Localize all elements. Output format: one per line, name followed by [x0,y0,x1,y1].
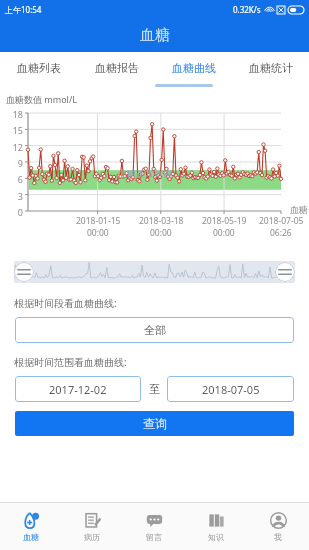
button[interactable]: Adjust range [275,262,295,282]
staticText: 根据时间范围看血糖曲线: [14,355,127,369]
staticText: 血糖曲线 [172,61,216,75]
button[interactable]: Adjust range [14,262,34,282]
button[interactable]: 血糖曲线 [155,52,232,84]
button[interactable]: 血糖报告 [78,52,155,84]
staticText: 2017-12-02 [49,382,107,397]
staticText: 00:00 [150,227,172,239]
button[interactable]: 病历 [61,503,123,550]
staticText: 00:00 [87,227,109,239]
button[interactable]: 血糖 [0,503,61,550]
staticText: 血糖 [140,26,170,45]
staticText: 上午10:54 [5,4,42,15]
staticText: 9 [5,157,23,169]
staticText: 0.32K/s [233,4,261,15]
button[interactable]: 2017-12-02 [15,376,141,402]
staticText: 血糖 [23,532,39,542]
button[interactable]: 查询 [15,411,294,436]
staticText: 06:26 [270,227,292,239]
staticText: 血糖列表 [17,61,61,75]
staticText: 2018-07-05 [202,382,260,397]
button[interactable]: 知识 [185,503,247,550]
staticText: 全部 [144,323,166,337]
button[interactable]: 血糖列表 [0,52,78,84]
staticText: 2018-01-15 [76,215,121,227]
staticText: 血糖正常范围 [118,168,172,179]
button[interactable]: 全部 [15,317,294,343]
staticText: 12 [5,141,23,153]
staticText: 血糖 [290,204,308,215]
staticText: 00:00 [213,227,235,239]
staticText: 18 [5,108,23,120]
staticText: 根据时间段看血糖曲线: [14,296,117,310]
staticText: 2018-03-18 [139,215,184,227]
staticText: 6 [5,173,23,185]
button[interactable]: 2018-07-05 [167,376,294,402]
staticText: 查询 [143,416,167,431]
staticText: 0 [5,206,23,218]
staticText: 血糖统计 [249,61,293,75]
staticText: 血糖报告 [95,61,139,75]
staticText: 至 [149,382,160,396]
staticText: 血糖数值 mmol/L [6,93,78,105]
staticText: 2018-07-05 [259,215,304,227]
staticText: 3 [5,190,23,202]
staticText: 留言 [146,532,162,542]
button[interactable]: 血糖统计 [232,52,309,84]
button[interactable]: 我 [247,503,309,550]
staticText: 病历 [84,532,100,542]
staticText: 2018-05-19 [202,215,247,227]
staticText: 知识 [208,532,224,542]
button[interactable]: 留言 [123,503,185,550]
staticText: 我 [274,532,282,542]
staticText: 15 [5,124,23,136]
